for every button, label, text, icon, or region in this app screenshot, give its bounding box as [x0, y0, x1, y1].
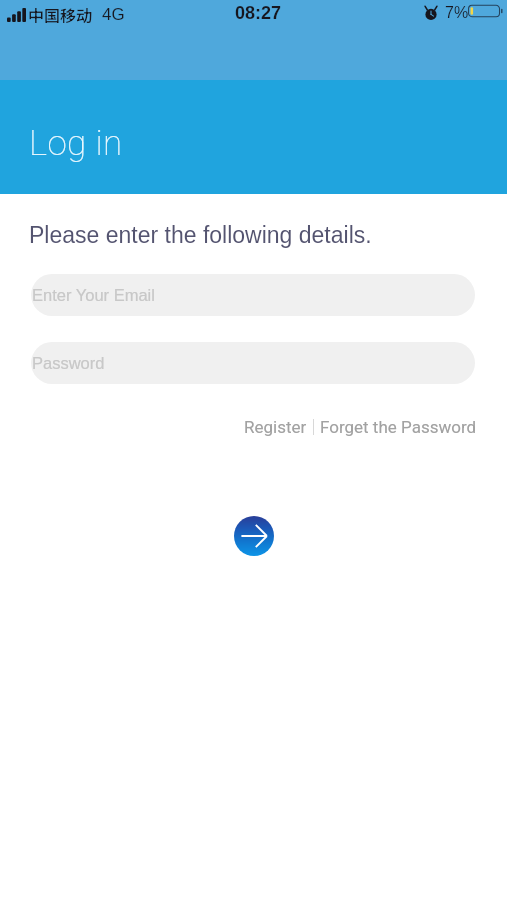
staticText: 4G [102, 5, 125, 24]
staticText: 中国移动 [28, 3, 93, 26]
staticText: Password [32, 354, 105, 372]
staticText: Enter Your Email [32, 286, 155, 304]
staticText: Please enter the following details. [29, 222, 372, 248]
button[interactable]: Forget the Password [320, 415, 477, 439]
button[interactable]: Submit [234, 516, 274, 556]
button[interactable]: Register [244, 415, 307, 439]
staticText: 08:27 [235, 3, 282, 23]
button[interactable]: Enter Your Email [31, 274, 475, 316]
staticText: 7% [445, 4, 469, 22]
staticText: Log in [29, 123, 123, 164]
button[interactable]: Password [31, 342, 475, 384]
